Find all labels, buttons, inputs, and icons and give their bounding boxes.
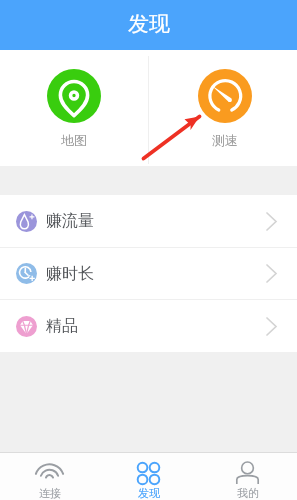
staticText: 连接: [39, 486, 61, 500]
staticText: 测速: [212, 132, 238, 148]
staticText: 地图: [61, 132, 87, 148]
other: Speed test: [198, 69, 252, 123]
staticText: 赚时长: [46, 264, 94, 284]
button[interactable]: Discover: [99, 453, 198, 500]
staticText: 发现: [128, 11, 170, 37]
staticText: 赚流量: [46, 211, 94, 231]
button[interactable]: 赚流量: [0, 195, 297, 247]
button[interactable]: Profile: [198, 453, 297, 500]
button[interactable]: Speed test: [153, 50, 297, 148]
other: Connect: [35, 459, 64, 488]
staticText: 精品: [46, 316, 78, 336]
button[interactable]: 赚时长: [0, 248, 297, 299]
staticText: 我的: [237, 486, 259, 500]
staticText: 发现: [138, 486, 160, 500]
other: Profile: [236, 461, 259, 484]
other: Map: [47, 69, 101, 123]
other: Discover: [137, 462, 160, 485]
button[interactable]: Map: [0, 50, 148, 148]
button[interactable]: Connect: [0, 453, 99, 500]
button[interactable]: 精品: [0, 300, 297, 352]
